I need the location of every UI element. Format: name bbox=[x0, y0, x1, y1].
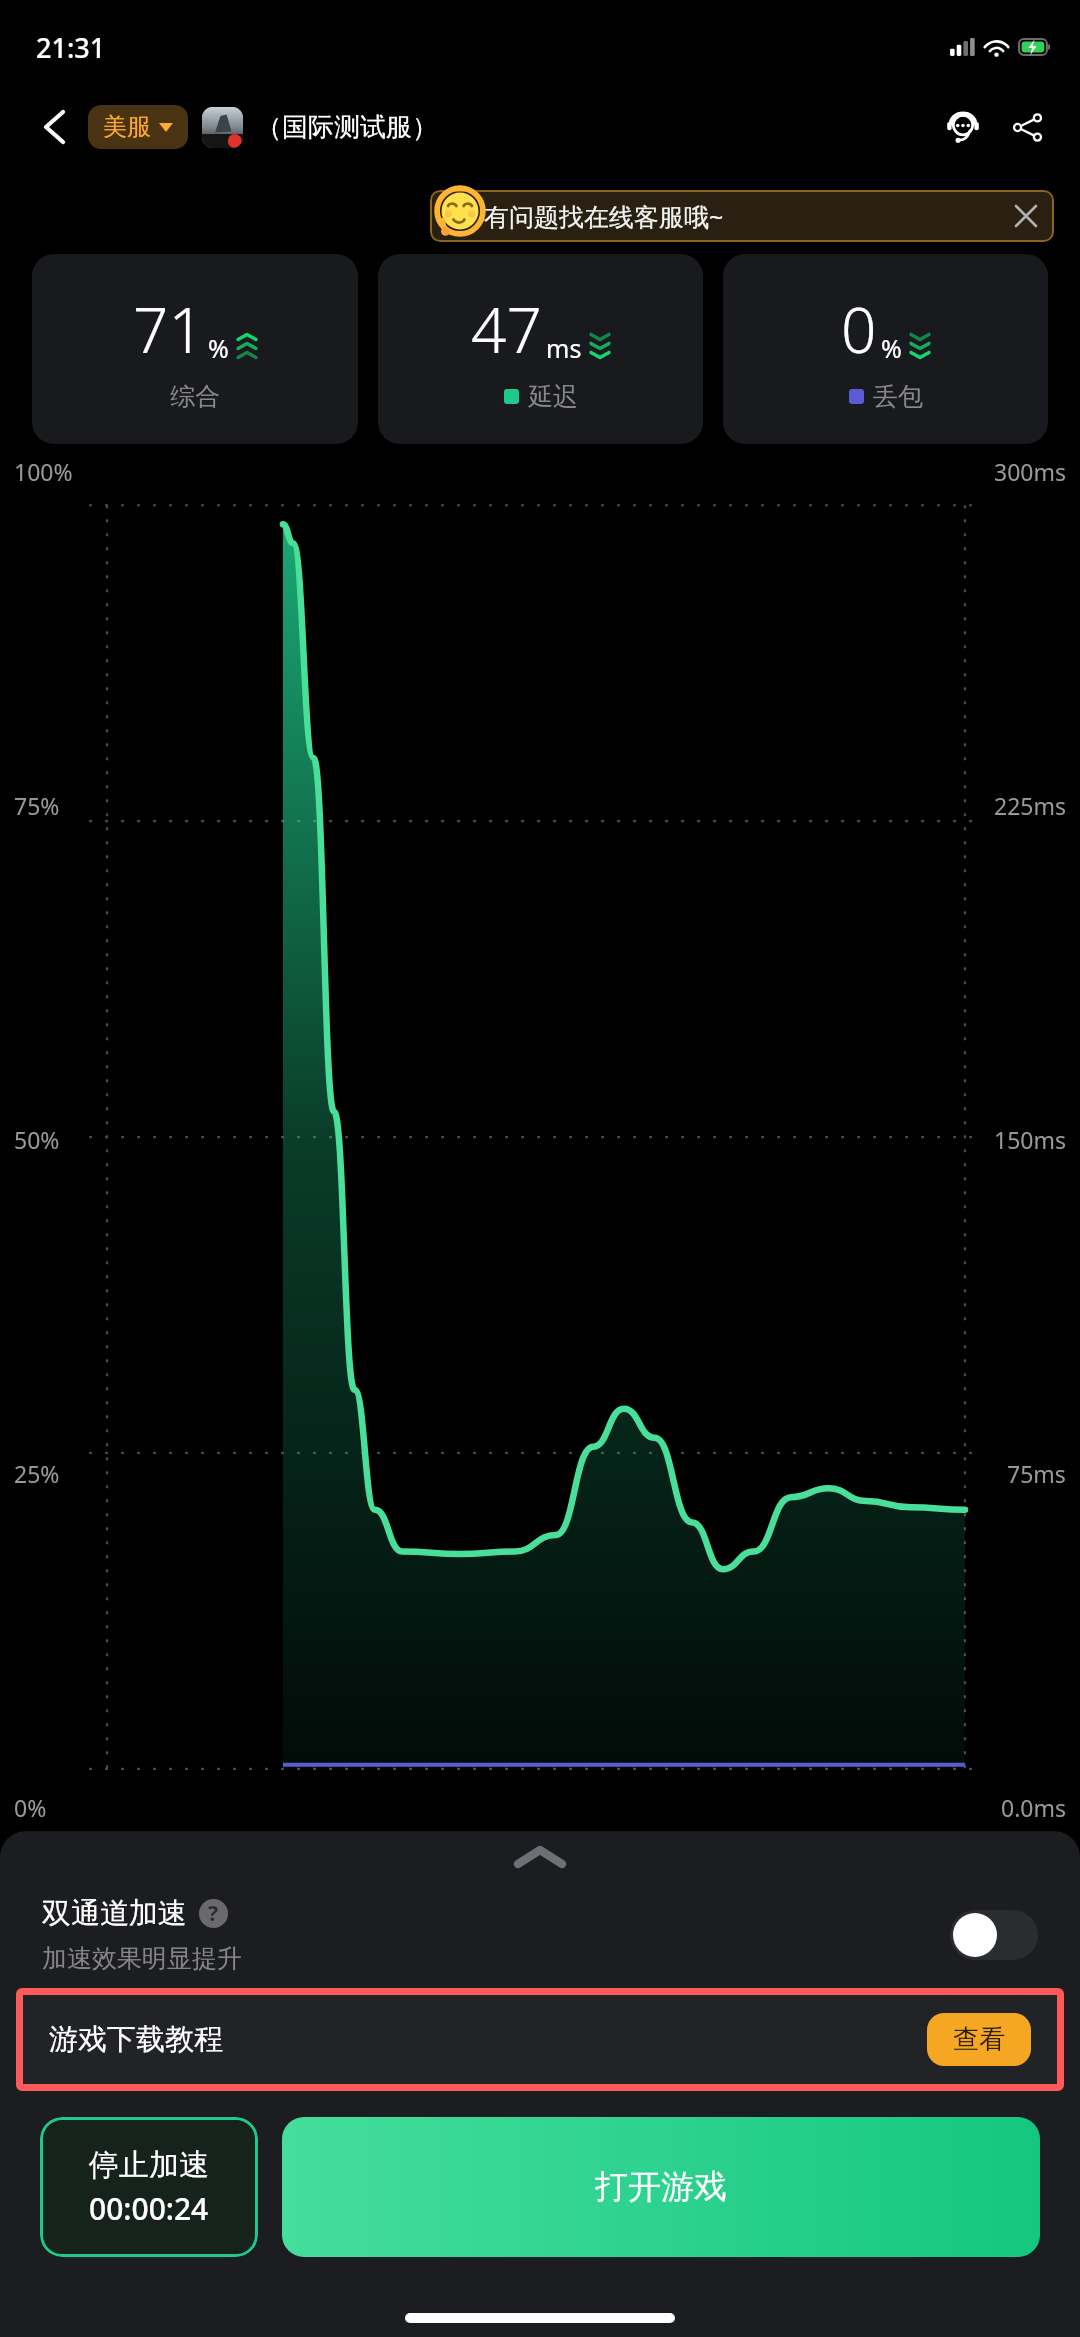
staticText: 游戏下载教程 bbox=[49, 2021, 223, 2058]
staticText: 美服 bbox=[103, 112, 151, 142]
button[interactable]: 美服 bbox=[88, 105, 188, 149]
staticText: 150ms bbox=[994, 1124, 1066, 1155]
staticText: 双通道加速 bbox=[42, 1895, 187, 1932]
staticText: 25% bbox=[14, 1458, 60, 1489]
staticText: 加速效果明显提升 bbox=[42, 1943, 242, 1974]
staticText: （国际测试服） bbox=[256, 111, 438, 144]
button[interactable]: 有问题找在线客服哦~ bbox=[430, 190, 1054, 242]
staticText: ms bbox=[546, 331, 582, 365]
staticText: % bbox=[208, 331, 229, 365]
staticText: 0% bbox=[14, 1792, 47, 1823]
staticText: 100% bbox=[14, 456, 73, 487]
button[interactable]: 游戏下载教程 bbox=[23, 1995, 1057, 2084]
button[interactable]: 停止加速 bbox=[40, 2117, 258, 2257]
staticText: 延迟 bbox=[528, 381, 578, 412]
staticText: 75ms bbox=[1007, 1458, 1066, 1489]
button[interactable]: 0 bbox=[723, 254, 1048, 444]
staticText: 21:31 bbox=[36, 29, 106, 66]
button[interactable]: Customer service bbox=[936, 100, 990, 154]
staticText: 0 bbox=[841, 287, 877, 371]
button[interactable]: Share bbox=[1002, 102, 1052, 152]
staticText: % bbox=[881, 331, 902, 365]
staticText: 0.0ms bbox=[1001, 1792, 1066, 1823]
staticText: 00:00:24 bbox=[89, 2188, 209, 2229]
staticText: 打开游戏 bbox=[595, 2166, 727, 2208]
button[interactable]: 打开游戏 bbox=[282, 2117, 1040, 2257]
staticText: ? bbox=[208, 1899, 219, 1928]
button[interactable]: 47 bbox=[378, 254, 703, 444]
staticText: 丢包 bbox=[873, 381, 923, 412]
staticText: 300ms bbox=[994, 456, 1066, 487]
staticText: 查看 bbox=[953, 2023, 1005, 2056]
button[interactable]: Expand bbox=[0, 1831, 1080, 1883]
button[interactable]: 双通道加速 bbox=[0, 1883, 1080, 1988]
staticText: 停止加速 bbox=[89, 2146, 209, 2184]
button[interactable]: 71 bbox=[32, 254, 358, 444]
staticText: 50% bbox=[14, 1124, 60, 1155]
staticText: 75% bbox=[14, 790, 60, 821]
staticText: 47 bbox=[471, 287, 542, 371]
button[interactable]: Back bbox=[28, 101, 80, 153]
staticText: 有问题找在线客服哦~ bbox=[484, 199, 724, 233]
button[interactable]: 查看 bbox=[927, 2013, 1031, 2066]
staticText: 71 bbox=[133, 287, 204, 371]
button[interactable]: Dual channel toggle bbox=[950, 1910, 1038, 1960]
staticText: 225ms bbox=[994, 790, 1066, 821]
staticText: 综合 bbox=[170, 381, 220, 412]
